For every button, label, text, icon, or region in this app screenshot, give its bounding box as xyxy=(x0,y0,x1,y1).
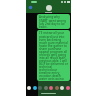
button[interactable] xyxy=(44,86,48,90)
button[interactable] xyxy=(55,86,59,90)
button[interactable] xyxy=(33,86,37,90)
button[interactable] xyxy=(27,86,31,90)
button[interactable] xyxy=(66,86,70,90)
staticText: Analyzing why START went wrong July 2nd … xyxy=(39,15,68,28)
button[interactable] xyxy=(38,86,42,90)
button[interactable]: Analyzing why START went wrong July 2nd … xyxy=(37,14,70,29)
staticText: I'll review all your postcard just into … xyxy=(39,31,68,80)
button[interactable]: I'll review all your postcard just into … xyxy=(37,30,70,81)
button[interactable]: Back xyxy=(28,5,33,10)
button[interactable] xyxy=(60,86,64,90)
button[interactable] xyxy=(49,86,53,90)
